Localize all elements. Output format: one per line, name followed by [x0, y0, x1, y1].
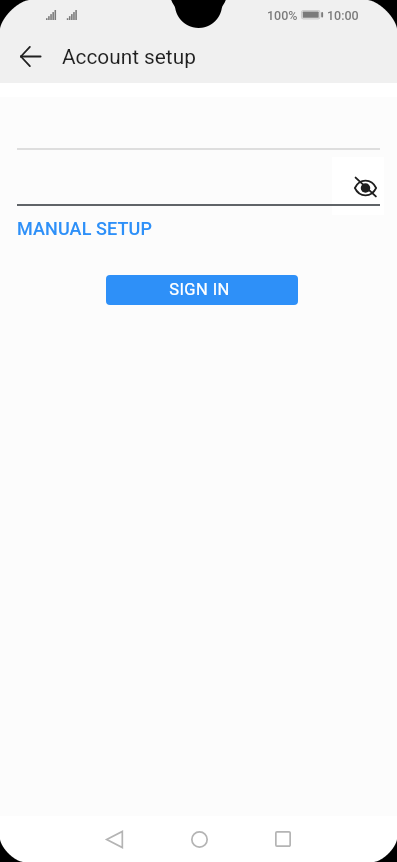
staticText: MANUAL SETUP — [17, 218, 152, 239]
button[interactable]: Back — [10, 36, 50, 76]
button[interactable]: Toggle password visibility — [332, 157, 384, 215]
button[interactable]: MANUAL SETUP — [17, 218, 152, 239]
staticText: 10:00 — [327, 8, 359, 23]
staticText: 100% — [267, 8, 298, 23]
button[interactable]: Back — [94, 819, 134, 859]
button[interactable]: SIGN IN — [106, 275, 298, 305]
staticText: Account setup — [62, 45, 196, 69]
button[interactable]: Home — [179, 819, 219, 859]
staticText: SIGN IN — [169, 280, 230, 299]
button[interactable]: Recents — [263, 819, 303, 859]
